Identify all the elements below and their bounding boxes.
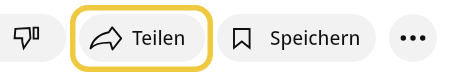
- button[interactable]: Teilen: [79, 14, 205, 62]
- button[interactable]: More options: [389, 14, 437, 62]
- staticText: Teilen: [132, 25, 186, 51]
- button[interactable]: Dislike: [0, 14, 66, 62]
- button[interactable]: Speichern: [217, 14, 376, 62]
- staticText: Speichern: [270, 25, 361, 51]
